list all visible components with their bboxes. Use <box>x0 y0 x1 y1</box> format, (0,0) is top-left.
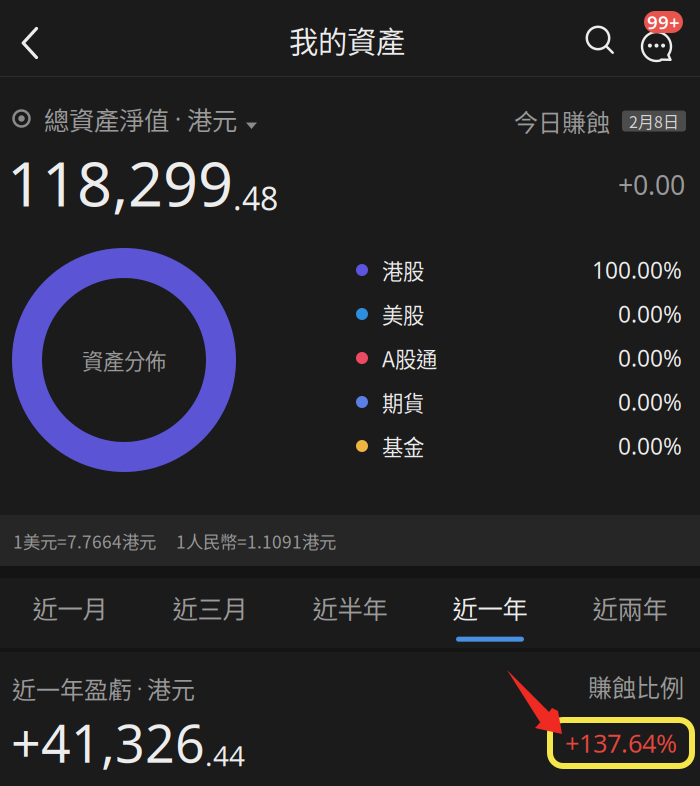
staticText: 港元 <box>187 101 237 137</box>
staticText: 近三月 <box>172 589 247 626</box>
staticText: 1美元=7.7664港元 <box>13 528 156 554</box>
staticText: 近一月 <box>32 589 107 626</box>
staticText: 我的資產 <box>289 19 405 61</box>
staticText: 港股 <box>382 255 424 285</box>
staticText: .48 <box>233 177 278 219</box>
staticText: 2月8日 <box>629 109 679 133</box>
button[interactable]: 基金 <box>356 424 682 468</box>
staticText: .44 <box>205 737 245 774</box>
button[interactable]: 期貨 <box>356 380 682 424</box>
button[interactable]: 港股 <box>356 248 682 292</box>
staticText: 0.00% <box>618 431 682 461</box>
button[interactable]: 近半年 <box>280 578 420 650</box>
staticText: 0.00% <box>618 343 682 373</box>
staticText: 近半年 <box>312 589 387 626</box>
staticText: 0.00% <box>618 387 682 417</box>
staticText: · <box>132 675 147 702</box>
button[interactable]: 總資產淨值 <box>44 106 257 132</box>
staticText: 基金 <box>382 431 424 461</box>
button[interactable]: 近三月 <box>140 578 280 650</box>
staticText: 118,299 <box>7 142 233 223</box>
staticText: 1人民幣=1.1091港元 <box>176 528 336 554</box>
staticText: · <box>169 104 187 134</box>
staticText: 港元 <box>147 671 195 706</box>
button[interactable]: Back <box>4 23 56 63</box>
button[interactable]: 近一年 <box>420 578 560 650</box>
button[interactable]: Messages, 99 plus unread <box>634 4 692 72</box>
staticText: 今日賺蝕 <box>514 104 610 138</box>
staticText: 100.00% <box>592 255 682 285</box>
button[interactable]: 我的資產 <box>280 22 414 58</box>
staticText: 總資產淨值 <box>44 101 169 137</box>
staticText: 賺蝕比例 <box>588 669 684 704</box>
staticText: 資產分佈 <box>82 345 166 375</box>
button[interactable]: Search <box>582 22 618 58</box>
staticText: +41,326 <box>11 708 205 777</box>
button[interactable]: 美股 <box>356 292 682 336</box>
staticText: 近一年盈虧 <box>12 671 132 706</box>
staticText: 近兩年 <box>592 589 667 626</box>
button[interactable]: 近一月 <box>0 578 140 650</box>
staticText: +137.64% <box>565 726 677 760</box>
staticText: +0.00 <box>618 167 685 202</box>
staticText: A股通 <box>382 343 437 373</box>
staticText: 期貨 <box>382 387 424 417</box>
button[interactable]: A股通 <box>356 336 682 380</box>
staticText: 近一年 <box>452 589 527 626</box>
button[interactable]: 近兩年 <box>560 578 700 650</box>
staticText: 美股 <box>382 299 424 329</box>
staticText: 99+ <box>647 10 680 34</box>
staticText: 0.00% <box>618 299 682 329</box>
